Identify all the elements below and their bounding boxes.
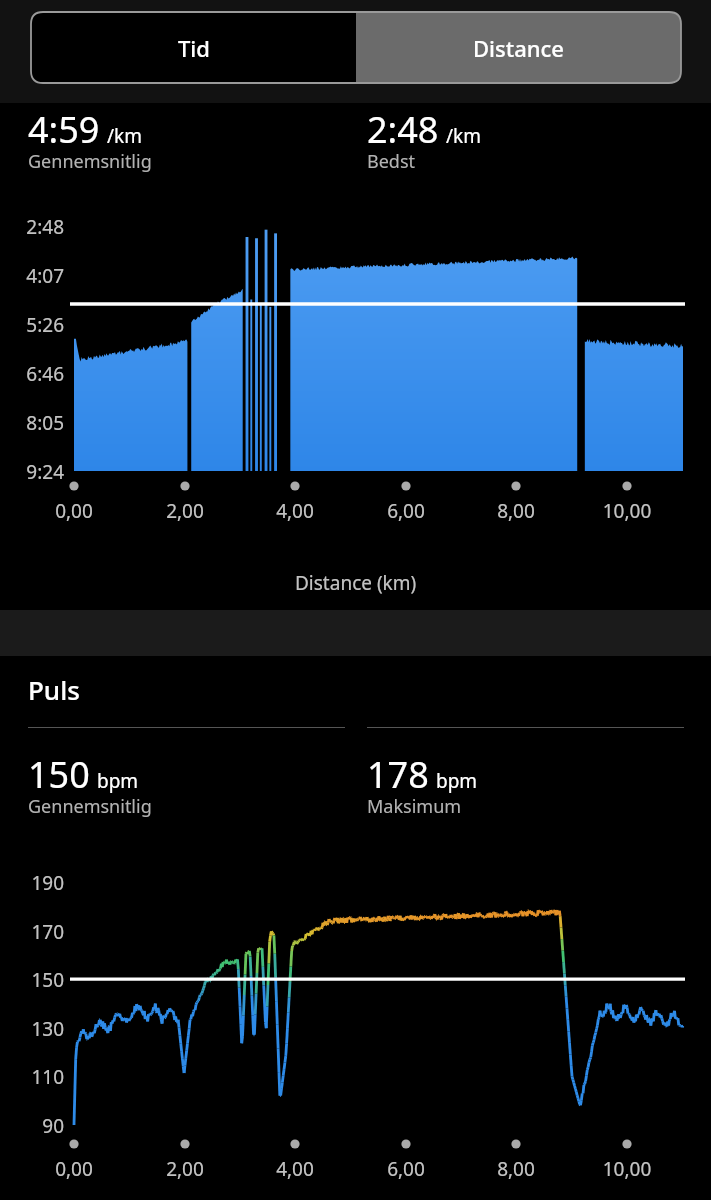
- staticText: 9:24: [0, 459, 64, 485]
- button[interactable]: Distance: [356, 12, 681, 83]
- staticText: 4,00: [247, 1156, 343, 1182]
- staticText: 10,00: [579, 1156, 675, 1182]
- staticText: /km: [446, 123, 481, 149]
- staticText: 4:07: [0, 263, 64, 289]
- staticText: 2:48: [0, 214, 64, 240]
- staticText: 0,00: [26, 498, 122, 524]
- staticText: Tid: [178, 33, 210, 63]
- staticText: 4:59: [28, 105, 100, 154]
- staticText: 5:26: [0, 312, 64, 338]
- button[interactable]: Tid: [31, 12, 356, 83]
- staticText: 6,00: [358, 1156, 454, 1182]
- staticText: Gennemsnitlig: [28, 149, 152, 174]
- staticText: bpm: [97, 768, 139, 794]
- staticText: 2,00: [137, 498, 233, 524]
- staticText: 150: [0, 967, 64, 993]
- staticText: 8:05: [0, 410, 64, 436]
- staticText: 2:48: [367, 105, 439, 154]
- staticText: 130: [0, 1016, 64, 1042]
- staticText: Distance: [473, 33, 564, 63]
- staticText: Distance (km): [295, 570, 417, 596]
- staticText: Gennemsnitlig: [28, 794, 152, 819]
- staticText: Puls: [28, 672, 80, 707]
- staticText: /km: [107, 123, 142, 149]
- staticText: 2,00: [137, 1156, 233, 1182]
- staticText: 4,00: [247, 498, 343, 524]
- staticText: 6:46: [0, 361, 64, 387]
- staticText: 10,00: [579, 498, 675, 524]
- staticText: 110: [0, 1064, 64, 1090]
- staticText: 190: [0, 870, 64, 896]
- staticText: 6,00: [358, 498, 454, 524]
- staticText: bpm: [436, 768, 478, 794]
- staticText: 170: [0, 919, 64, 945]
- staticText: 90: [0, 1113, 64, 1139]
- staticText: Bedst: [367, 149, 416, 174]
- staticText: 178: [367, 750, 429, 799]
- staticText: 0,00: [26, 1156, 122, 1182]
- staticText: 8,00: [468, 498, 564, 524]
- staticText: 150: [28, 750, 90, 799]
- staticText: 8,00: [468, 1156, 564, 1182]
- staticText: Maksimum: [367, 794, 462, 819]
